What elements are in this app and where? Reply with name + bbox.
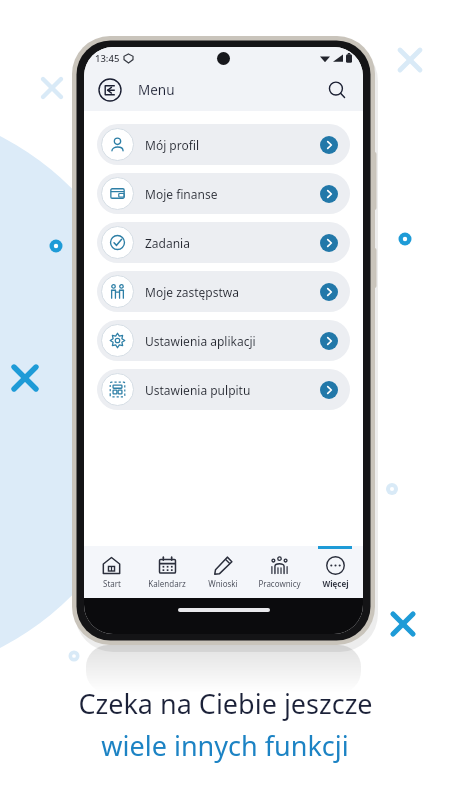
staticText: Mój profil [145, 137, 200, 153]
staticText: Kalendarz [148, 578, 186, 589]
staticText: Pracownicy [258, 578, 301, 589]
button[interactable]: Menu [96, 76, 124, 104]
button[interactable]: Wnioski [195, 546, 251, 598]
button[interactable]: Kalendarz [139, 546, 195, 598]
staticText: Wnioski [208, 578, 238, 589]
staticText: Ustawienia aplikacji [145, 333, 256, 349]
staticText: Czeka na Ciebie jeszcze [78, 685, 373, 722]
button[interactable]: Moje finanse [97, 173, 350, 214]
staticText: Więcej [322, 578, 349, 589]
staticText: 13:45 [95, 52, 120, 65]
button[interactable]: Moje zastępstwa [97, 271, 350, 312]
button[interactable]: Mój profil [97, 124, 350, 165]
button[interactable]: Więcej [307, 546, 363, 598]
button[interactable]: Zadania [97, 222, 350, 263]
staticText: Menu [138, 81, 175, 99]
button[interactable]: Ustawienia aplikacji [97, 320, 350, 361]
staticText: Moje zastępstwa [145, 284, 239, 300]
staticText: Zadania [145, 235, 190, 251]
staticText: Ustawienia pulpitu [145, 382, 251, 398]
button[interactable]: Ustawienia pulpitu [97, 369, 350, 410]
button[interactable]: Search [323, 76, 351, 104]
button[interactable]: Start [84, 546, 139, 598]
staticText: Start [103, 578, 121, 589]
button[interactable]: Pracownicy [251, 546, 307, 598]
staticText: Moje finanse [145, 186, 218, 202]
staticText: wiele innych funkcji [101, 727, 349, 764]
